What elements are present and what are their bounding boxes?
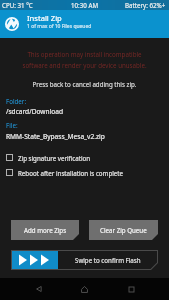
staticText: /sdcard/Download: [6, 107, 64, 116]
button[interactable]: Add more Zips: [11, 220, 79, 240]
staticText: Clear Zip Queue: [100, 226, 147, 234]
button[interactable]: Home: [73, 278, 95, 300]
button[interactable]: Reboot after installation is complete: [0, 166, 169, 179]
staticText: 10:30 AM: [71, 1, 98, 9]
staticText: Install Zip: [27, 13, 62, 23]
staticText: Folder:: [6, 97, 27, 105]
staticText: Reboot after installation is complete: [18, 169, 124, 177]
button[interactable]: Zip signature verification: [0, 151, 169, 164]
staticText: Press back to cancel adding this zip.: [0, 80, 169, 88]
staticText: CPU: 31 °C: [2, 1, 33, 9]
staticText: Battery: 62%+: [125, 1, 166, 9]
button[interactable]: Back: [28, 278, 50, 300]
staticText: Add more Zips: [24, 226, 67, 234]
staticText: Swipe to confirm Flash: [75, 256, 141, 264]
staticText: software and render your device unusable…: [0, 61, 169, 69]
staticText: Zip signature verification: [18, 154, 91, 162]
staticText: 1 of max of 10 Files queued: [27, 23, 92, 30]
button[interactable]: Clear Zip Queue: [89, 220, 158, 240]
staticText: File:: [6, 121, 18, 129]
staticText: RMM-State_Bypass_Mesa_v2.zip: [6, 132, 105, 141]
button[interactable]: Recent apps: [120, 278, 142, 300]
button[interactable]: Swipe to confirm Flash: [11, 250, 158, 270]
staticText: This operation may install incompatible: [0, 50, 169, 58]
